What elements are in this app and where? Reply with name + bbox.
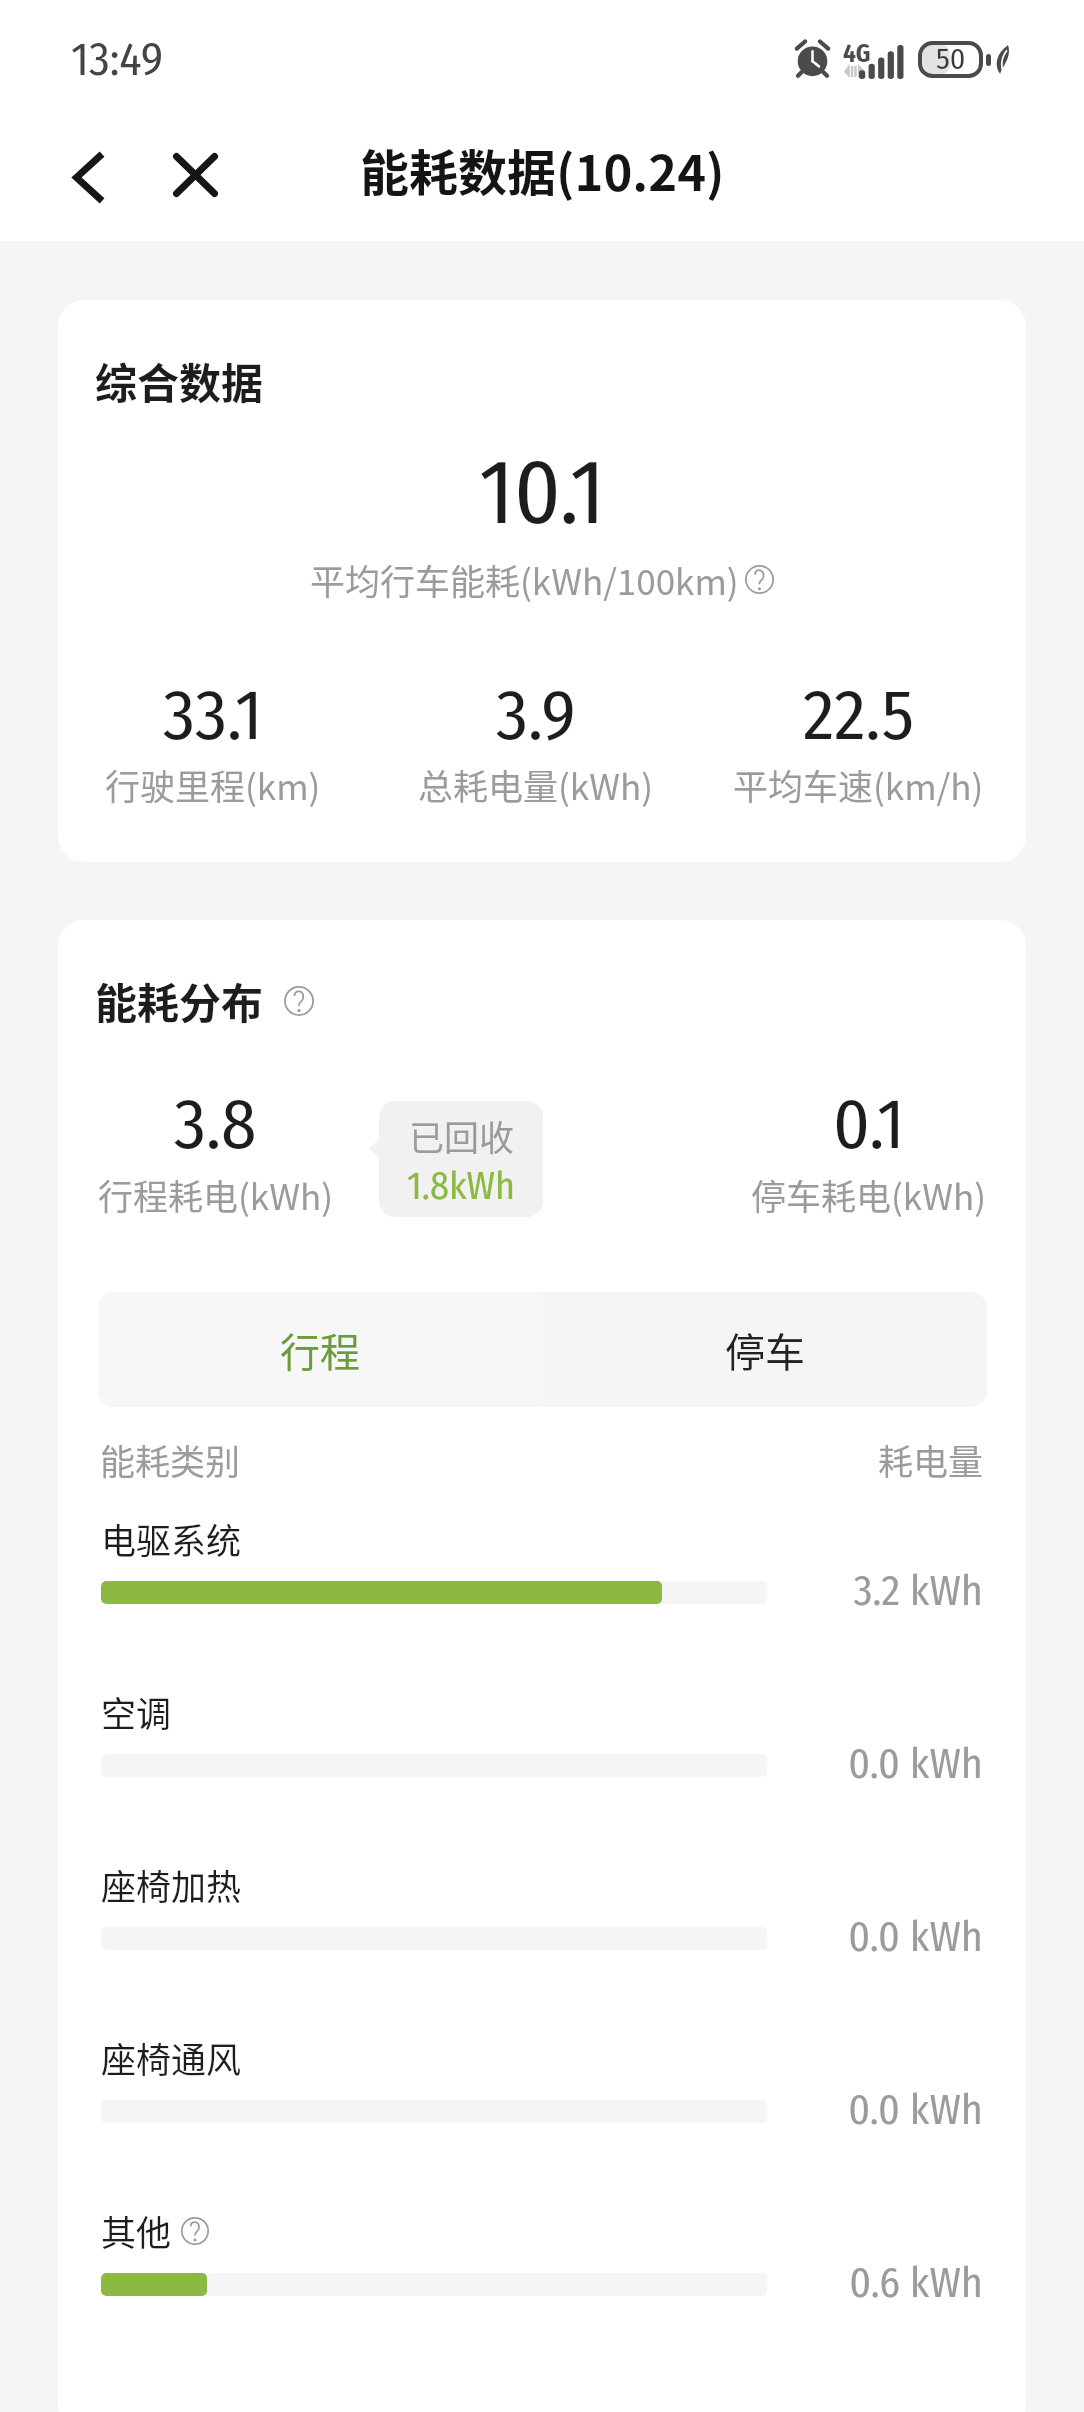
staticText: 3.9: [496, 673, 576, 758]
staticText: 平均车速(km/h): [733, 759, 984, 810]
button[interactable]: Close: [155, 135, 235, 215]
staticText: 4G: [843, 39, 871, 69]
staticText: 耗电量: [878, 1434, 984, 1485]
staticText: 综合数据: [95, 350, 264, 411]
button[interactable]: More info: [181, 2217, 209, 2245]
staticText: 0.1: [833, 1082, 905, 1167]
button[interactable]: More info: [284, 986, 314, 1016]
staticText: 50: [936, 41, 966, 77]
button[interactable]: 停车: [542, 1292, 987, 1407]
staticText: 停车耗电(kWh): [751, 1169, 986, 1220]
staticText: 0.0 kWh: [58, 1912, 983, 1962]
staticText: 3.2 kWh: [58, 1566, 983, 1616]
staticText: 33.1: [163, 673, 263, 758]
staticText: 停车: [725, 1321, 805, 1379]
button[interactable]: More info: [745, 565, 774, 594]
staticText: 22.5: [803, 673, 914, 758]
staticText: 0.6 kWh: [58, 2258, 983, 2308]
staticText: 1.8kWh: [407, 1163, 516, 1209]
staticText: 平均行车能耗(kWh/100km): [310, 554, 739, 605]
staticText: 能耗类别: [100, 1434, 241, 1485]
staticText: 10.1: [58, 439, 1026, 547]
button[interactable]: Back: [48, 137, 128, 217]
staticText: 座椅加热: [101, 1859, 242, 1910]
staticText: 行驶里程(km): [105, 759, 321, 810]
staticText: 行程耗电(kWh): [98, 1169, 333, 1220]
staticText: 座椅通风: [101, 2032, 242, 2083]
staticText: 其他: [101, 2205, 172, 2256]
staticText: 能耗分布: [95, 970, 264, 1031]
staticText: 已回收: [409, 1110, 515, 1161]
button[interactable]: 行程: [98, 1292, 542, 1407]
staticText: 能耗数据(10.24): [360, 134, 725, 205]
staticText: 0.0 kWh: [58, 2085, 983, 2135]
staticText: 空调: [101, 1686, 172, 1737]
staticText: 总耗电量(kWh): [418, 759, 653, 810]
staticText: 13:49: [71, 32, 164, 87]
staticText: 0.0 kWh: [58, 1739, 983, 1789]
staticText: 3.8: [174, 1082, 257, 1167]
staticText: 电驱系统: [101, 1513, 242, 1564]
staticText: 行程: [280, 1321, 360, 1379]
